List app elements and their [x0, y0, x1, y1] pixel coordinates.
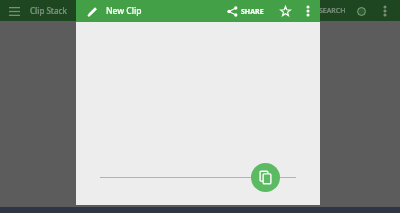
button[interactable]: Edit	[84, 3, 100, 19]
button[interactable]: Favourite	[277, 3, 293, 19]
button[interactable]: Open navigation drawer	[6, 3, 22, 19]
staticText: SHARE	[241, 7, 264, 17]
button[interactable]: Copy clip	[251, 163, 280, 192]
button[interactable]: Account	[354, 4, 368, 18]
staticText: New Clip	[106, 5, 142, 17]
button[interactable]: More options	[378, 4, 392, 18]
button[interactable]: More options	[301, 4, 315, 18]
staticText: Clip Stack	[30, 5, 67, 16]
button[interactable]: SHARE	[224, 4, 267, 19]
staticText: SEARCH	[319, 6, 346, 16]
